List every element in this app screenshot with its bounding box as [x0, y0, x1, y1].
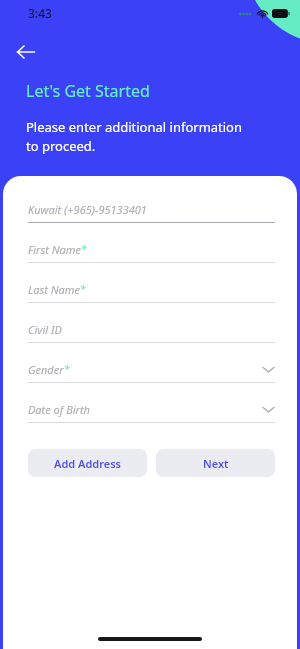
button[interactable]: Gender [28, 362, 275, 383]
staticText: Date of Birth [28, 402, 90, 417]
button[interactable]: Last Name [28, 282, 275, 303]
button[interactable]: Kuwait (+965)-95133401 [28, 202, 275, 223]
staticText: 3:43 [28, 5, 52, 21]
staticText: Gender [28, 362, 64, 377]
button[interactable]: First Name [28, 242, 275, 263]
staticText: * [80, 282, 86, 296]
staticText: Civil ID [28, 322, 62, 337]
button[interactable]: Back [6, 32, 46, 72]
staticText: * [81, 242, 87, 256]
button[interactable]: Date of Birth [28, 402, 275, 423]
staticText: Add Address [54, 456, 122, 471]
button[interactable]: Next [156, 449, 275, 477]
staticText: Kuwait (+965)-95133401 [28, 202, 147, 217]
staticText: Last Name [28, 282, 80, 297]
staticText: * [64, 362, 70, 376]
button[interactable]: Add Address [28, 449, 147, 477]
button[interactable]: Civil ID [28, 322, 275, 343]
staticText: Let's Get Started [26, 80, 150, 102]
staticText: Next [203, 456, 229, 471]
staticText: First Name [28, 242, 81, 257]
staticText: Please enter additional information to p… [26, 118, 243, 155]
